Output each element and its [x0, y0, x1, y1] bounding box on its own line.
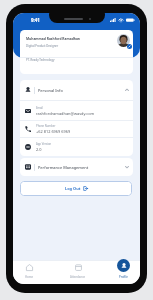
staticText: 2.0: [36, 147, 42, 152]
staticText: Email: [36, 106, 43, 110]
button[interactable]: App Version: [20, 138, 133, 156]
button[interactable]: Email: [20, 101, 133, 120]
button[interactable]: Log Out: [20, 181, 132, 196]
staticText: Home: [25, 275, 33, 279]
staticText: Performance Management: [38, 165, 89, 170]
staticText: App Version: [36, 142, 52, 146]
staticText: 9:41: [31, 17, 40, 23]
staticText: Log Out: [65, 186, 81, 191]
staticText: rashfordramadhan@wasdy.com: [36, 111, 95, 116]
staticText: Phone Number: [36, 124, 56, 128]
button[interactable]: Muhammad Rashford Ramadhan: [20, 30, 133, 74]
button[interactable]: Home: [14, 260, 44, 284]
button[interactable]: Performance Management: [20, 158, 133, 176]
button[interactable]: Attendance: [63, 260, 93, 284]
staticText: Personal Info: [38, 88, 63, 93]
staticText: Muhammad Rashford Ramadhan: [26, 36, 81, 40]
staticText: PT. Ready Technology: [26, 58, 55, 62]
button[interactable]: Personal Info: [20, 80, 133, 100]
button[interactable]: Edit profile photo: [127, 44, 132, 49]
button[interactable]: Profile: [108, 260, 138, 284]
button[interactable]: Phone Number: [20, 121, 133, 137]
staticText: +62 812 6969 6969: [36, 129, 71, 134]
staticText: Attendance: [70, 275, 86, 279]
staticText: Profile: [119, 275, 128, 279]
staticText: Digital Product Designer: [26, 44, 59, 48]
